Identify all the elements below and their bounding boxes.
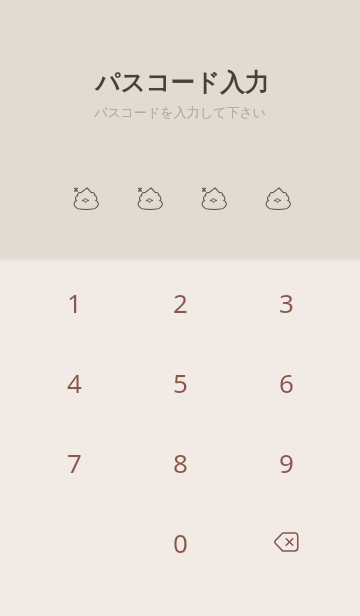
staticText: 2 <box>173 285 188 320</box>
button[interactable]: 2 <box>127 262 233 342</box>
staticText: 6 <box>279 365 294 400</box>
button[interactable]: 0 <box>127 502 233 582</box>
staticText: 5 <box>173 365 188 400</box>
staticText: 8 <box>173 445 188 480</box>
button[interactable]: 7 <box>21 422 127 502</box>
other: Delete <box>271 530 301 554</box>
staticText: 3 <box>279 285 294 320</box>
staticText: パスコードを入力して下さい <box>94 104 266 120</box>
staticText: 0 <box>173 525 188 560</box>
button[interactable]: 5 <box>127 342 233 422</box>
staticText: 1 <box>67 285 82 320</box>
staticText: 4 <box>67 365 82 400</box>
button[interactable]: 3 <box>233 262 339 342</box>
button[interactable]: 4 <box>21 342 127 422</box>
button[interactable]: 8 <box>127 422 233 502</box>
staticText: 7 <box>67 445 82 480</box>
staticText: パスコード入力 <box>95 67 269 98</box>
staticText: 9 <box>279 445 294 480</box>
button[interactable]: 1 <box>21 262 127 342</box>
button[interactable]: Delete <box>233 502 339 582</box>
button[interactable]: 6 <box>233 342 339 422</box>
button[interactable]: 9 <box>233 422 339 502</box>
